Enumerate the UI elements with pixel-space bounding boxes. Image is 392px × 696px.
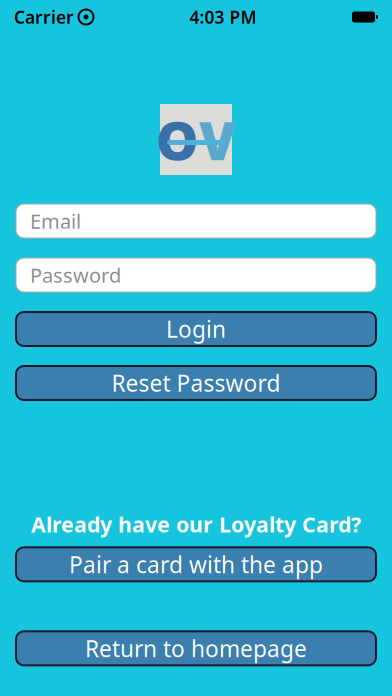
staticText: O [156,104,199,175]
button[interactable]: Reset Password [16,366,376,400]
staticText: Email [30,208,81,234]
staticText: Return to homepage [85,633,307,663]
button[interactable]: Return to homepage [16,631,376,665]
staticText: Login [166,314,226,344]
button[interactable]: Email [16,204,376,238]
staticText: V [199,104,236,175]
button[interactable]: Password [16,258,376,292]
staticText [73,2,79,32]
staticText: 4:03 PM [189,5,256,28]
staticText: Already have our Loyalty Card? [31,510,361,538]
staticText: Pair a card with the app [69,549,323,579]
staticText: Password [30,262,121,288]
button[interactable]: Pair a card with the app [16,547,376,581]
staticText: Reset Password [111,368,280,398]
button[interactable]: Login [16,312,376,346]
staticText: Carrier [14,5,74,28]
